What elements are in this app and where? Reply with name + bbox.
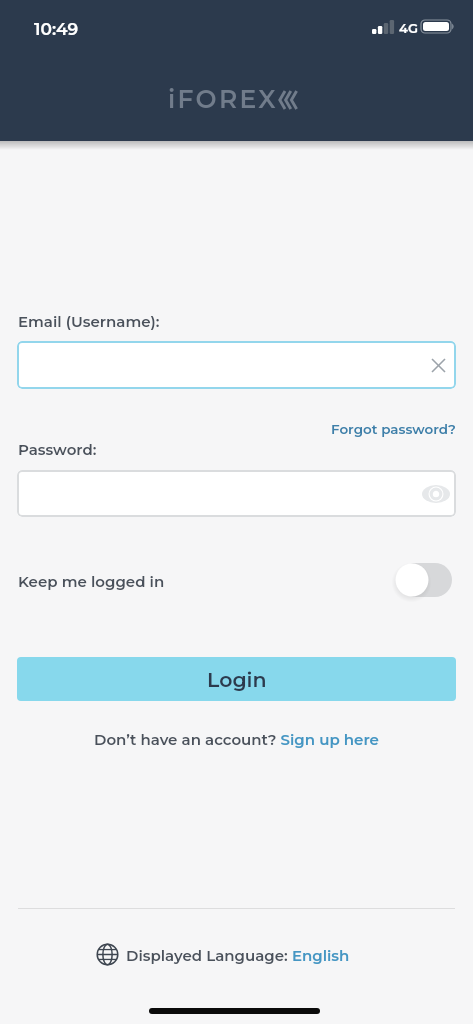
staticText: Don’t have an account? Sign up here: [94, 730, 379, 748]
staticText: Keep me logged in: [18, 572, 165, 590]
button[interactable]: Displayed Language: English: [96, 943, 378, 966]
staticText: Login: [207, 667, 267, 692]
button[interactable]: [17, 341, 456, 389]
staticText: Password:: [18, 440, 97, 458]
staticText: Forgot password?: [331, 421, 456, 437]
button[interactable]: [393, 561, 456, 599]
button[interactable]: Login: [17, 657, 456, 701]
staticText: 4G: [399, 20, 418, 36]
staticText: 10:49: [34, 19, 79, 40]
button[interactable]: Don’t have an account? Sign up here: [94, 730, 379, 748]
staticText: Displayed Language: English: [126, 946, 350, 964]
staticText: Email (Username):: [18, 312, 160, 330]
staticText: iFOREX: [168, 84, 278, 114]
button[interactable]: [17, 470, 456, 517]
button[interactable]: Forgot password?: [331, 421, 456, 437]
